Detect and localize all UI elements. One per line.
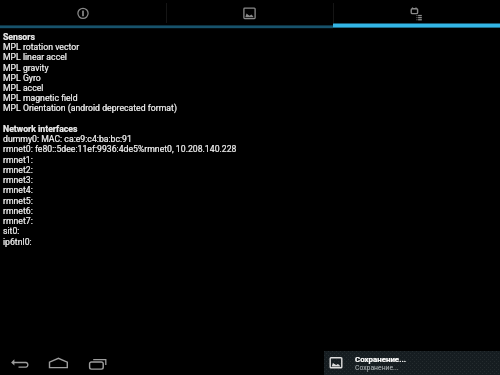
- staticText: MPL Orientation (android deprecated form…: [3, 103, 177, 113]
- staticText: rmnet1:: [3, 155, 33, 165]
- staticText: MPL magnetic field: [3, 93, 78, 103]
- staticText: rmnet3:: [3, 175, 33, 185]
- staticText: dummy0: MAC: ca:e9:c4:ba:bc:91: [3, 134, 132, 144]
- staticText: rmnet0: fe80::5dee:11ef:9936:4de5%rmnet0…: [3, 144, 237, 154]
- staticText: sit0:: [3, 226, 20, 236]
- staticText: ip6tnl0:: [3, 237, 32, 247]
- button[interactable]: Back: [0, 345, 38, 375]
- staticText: rmnet6:: [3, 206, 33, 216]
- button[interactable]: Device info: [333, 0, 500, 29]
- staticText: Сохранение...: [355, 355, 407, 364]
- staticText: rmnet7:: [3, 216, 33, 226]
- staticText: rmnet2:: [3, 165, 33, 175]
- staticText: MPL Gyro: [3, 73, 41, 83]
- staticText: Network interfaces: [3, 124, 78, 134]
- staticText: Сохранение...: [355, 364, 399, 372]
- button[interactable]: Recents: [79, 345, 117, 375]
- button[interactable]: Сохранение...: [324, 351, 500, 375]
- staticText: rmnet5:: [3, 196, 33, 206]
- button[interactable]: Info: [0, 0, 166, 29]
- button[interactable]: Screenshot: [166, 0, 333, 29]
- staticText: MPL accel: [3, 83, 44, 93]
- staticText: rmnet4:: [3, 185, 33, 195]
- staticText: Sensors: [3, 32, 35, 42]
- staticText: MPL gravity: [3, 63, 49, 73]
- staticText: MPL rotation vector: [3, 42, 80, 52]
- button[interactable]: Home: [39, 345, 77, 375]
- staticText: MPL linear accel: [3, 52, 67, 62]
